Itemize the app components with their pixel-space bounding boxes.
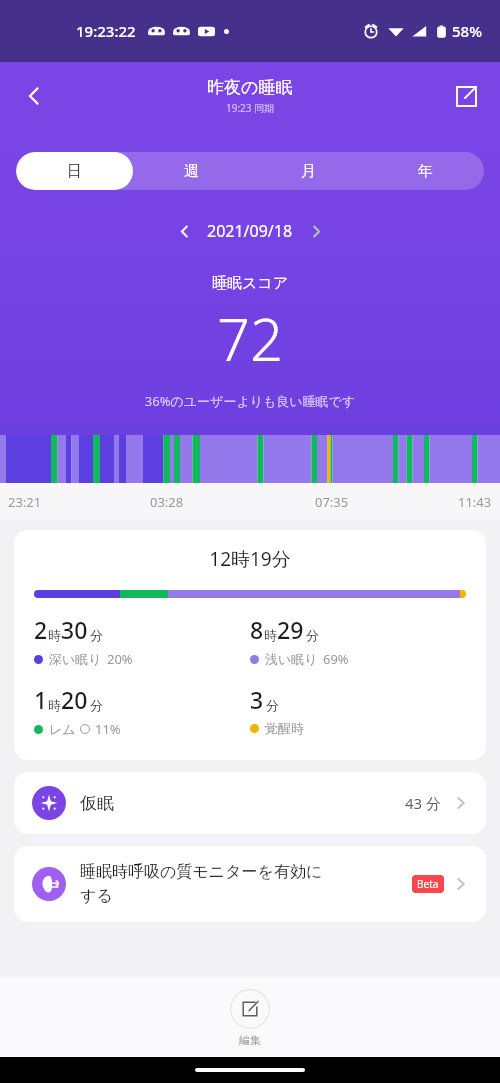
staticText: 30: [61, 614, 88, 645]
staticText: 分: [90, 627, 103, 643]
staticText: 時: [264, 627, 277, 643]
staticText: 2021/09/18: [207, 220, 293, 242]
staticText: 19:23 同期: [226, 101, 275, 115]
staticText: 12時19分: [34, 546, 466, 572]
staticText: 深い眠り: [49, 651, 102, 667]
staticText: 43 分: [405, 793, 442, 813]
staticText: 睡眠時呼吸の質モニターを有効に する: [80, 862, 406, 906]
button[interactable]: 編集: [0, 977, 500, 1057]
staticText: 分: [266, 697, 279, 713]
staticText: Beta: [417, 877, 439, 891]
staticText: 分: [90, 697, 103, 713]
staticText: 07:35: [315, 493, 349, 511]
staticText: 19:23:22: [76, 21, 136, 41]
staticText: 03:28: [150, 493, 184, 511]
button[interactable]: 睡眠時呼吸の質モニターを有効に する: [14, 846, 486, 922]
staticText: 編集: [239, 1033, 261, 1047]
staticText: 月: [301, 162, 316, 181]
button[interactable]: 12時19分: [14, 530, 486, 760]
staticText: 時: [48, 627, 61, 643]
button[interactable]: 日: [16, 152, 133, 190]
staticText: 23:21: [8, 493, 42, 511]
staticText: 72: [0, 299, 500, 378]
staticText: 2: [34, 614, 48, 645]
staticText: 11:43: [458, 493, 492, 511]
staticText: 69%: [323, 650, 349, 668]
staticText: 年: [418, 162, 433, 181]
staticText: 時: [48, 697, 61, 713]
staticText: 20%: [107, 650, 133, 668]
staticText: 週: [184, 162, 199, 181]
button[interactable]: Previous day: [167, 214, 201, 248]
staticText: 3: [250, 684, 264, 715]
button[interactable]: 年: [367, 152, 484, 190]
staticText: 36%のユーザーよりも良い睡眠です: [0, 392, 500, 410]
button[interactable]: 仮眠: [14, 772, 486, 834]
staticText: 1: [34, 684, 48, 715]
button[interactable]: Back: [10, 72, 58, 120]
staticText: 8: [250, 614, 264, 645]
staticText: 睡眠スコア: [0, 274, 500, 293]
staticText: 仮眠: [80, 793, 114, 814]
staticText: 日: [67, 162, 82, 181]
staticText: 浅い眠り: [265, 651, 318, 667]
button[interactable]: 週: [133, 152, 250, 190]
staticText: 分: [306, 627, 319, 643]
staticText: レム: [49, 721, 76, 737]
staticText: 覚醒時: [265, 720, 304, 736]
button[interactable]: Share: [442, 72, 490, 120]
staticText: 11%: [95, 720, 121, 738]
button[interactable]: Next day: [299, 214, 333, 248]
staticText: 29: [277, 614, 304, 645]
staticText: 58%: [452, 21, 482, 41]
staticText: 昨夜の睡眠: [207, 77, 293, 98]
button[interactable]: 月: [250, 152, 367, 190]
staticText: 20: [61, 684, 88, 715]
